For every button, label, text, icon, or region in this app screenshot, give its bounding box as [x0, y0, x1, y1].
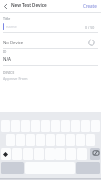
staticText: No Device	[3, 39, 24, 45]
staticText: Create	[83, 3, 97, 9]
staticText: ID	[3, 50, 7, 54]
button[interactable]	[3, 4, 8, 9]
button[interactable]	[90, 148, 100, 160]
staticText: 0 / 50	[85, 25, 95, 30]
staticText: N/A	[3, 56, 11, 62]
staticText: Title	[3, 16, 11, 21]
button[interactable]: No Device	[0, 36, 101, 47]
button[interactable]: Create	[83, 3, 97, 9]
button[interactable]	[1, 148, 11, 160]
staticText: DEVICE	[3, 70, 15, 74]
staticText: New Test Device	[11, 2, 47, 8]
staticText: name	[6, 24, 17, 29]
staticText: Approve From	[3, 76, 28, 81]
